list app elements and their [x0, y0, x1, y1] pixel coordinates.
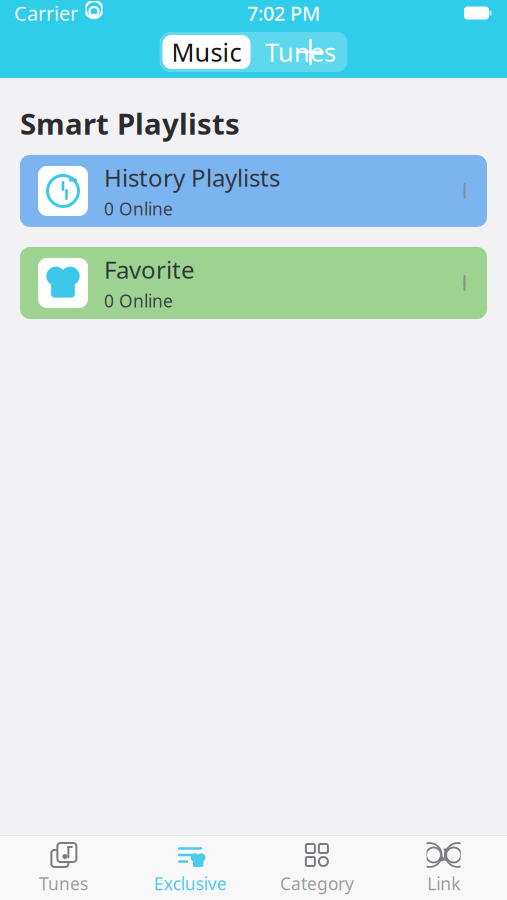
staticText: Tunes: [39, 872, 88, 895]
staticText: 7:02 PM: [247, 0, 320, 26]
staticText: Link: [427, 872, 460, 895]
button[interactable]: Favorite: [20, 247, 487, 319]
staticText: Category: [280, 872, 354, 895]
button[interactable]: Tunes: [253, 32, 347, 72]
button[interactable]: History Playlists: [20, 155, 487, 227]
staticText: Smart Playlists: [20, 104, 240, 143]
staticText: 0 Online: [104, 289, 173, 312]
button[interactable]: Music: [159, 32, 253, 72]
staticText: 0 Online: [104, 197, 173, 220]
button[interactable]: Tunes: [0, 837, 127, 899]
button[interactable]: Add: [293, 35, 347, 69]
staticText: Favorite: [104, 253, 195, 285]
button[interactable]: Category: [253, 837, 380, 899]
staticText: Tunes: [265, 35, 336, 69]
button[interactable]: Link: [380, 837, 507, 899]
staticText: Exclusive: [154, 872, 227, 895]
staticText: History Playlists: [104, 161, 280, 193]
staticText: Music: [171, 35, 241, 69]
staticText: Carrier: [14, 0, 78, 26]
button[interactable]: Exclusive: [127, 837, 254, 899]
